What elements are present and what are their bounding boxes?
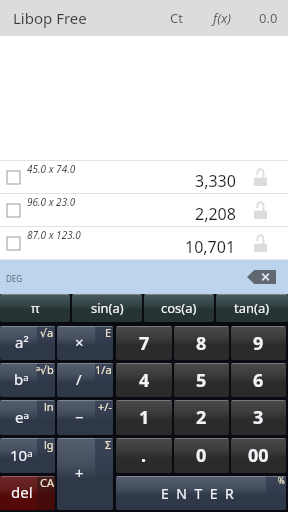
- staticText: /: [76, 369, 82, 389]
- button[interactable]: Ct: [162, 0, 191, 36]
- button[interactable]: tan(a): [216, 294, 288, 322]
- staticText: 3: [253, 405, 264, 430]
- staticText: +/-: [98, 400, 112, 414]
- staticText: 9: [253, 331, 264, 356]
- staticText: 3,330: [195, 170, 236, 192]
- staticText: 10,701: [185, 236, 236, 258]
- button[interactable]: ENTER: [116, 476, 286, 510]
- button[interactable]: 4: [116, 363, 172, 397]
- staticText: 96.0 x 23.0: [27, 195, 76, 209]
- staticText: +: [75, 463, 84, 483]
- button[interactable]: f(x): [206, 0, 238, 36]
- button[interactable]: ×: [57, 326, 113, 360]
- button[interactable]: Lock: [254, 168, 267, 186]
- button[interactable]: 45.0 x 74.0: [0, 161, 288, 193]
- button[interactable]: sin(a): [72, 294, 142, 322]
- staticText: lg: [44, 438, 54, 452]
- button[interactable]: 8: [174, 326, 229, 360]
- button[interactable]: 87.0 x 123.0: [0, 227, 288, 259]
- staticText: 4: [139, 368, 150, 393]
- staticText: 8: [196, 331, 207, 356]
- staticText: Libop Free: [13, 8, 87, 28]
- staticText: del: [11, 482, 33, 502]
- staticText: π: [31, 299, 40, 317]
- staticText: 0: [196, 443, 207, 468]
- staticText: 1/a: [95, 363, 112, 377]
- button[interactable]: 6: [231, 363, 286, 397]
- staticText: ᵃ√b: [36, 363, 54, 377]
- staticText: cos(a): [161, 299, 197, 317]
- staticText: .: [141, 443, 147, 468]
- staticText: 7: [139, 331, 150, 356]
- staticText: 45.0 x 74.0: [27, 162, 76, 176]
- button[interactable]: Backspace: [247, 270, 276, 284]
- staticText: 1: [139, 405, 150, 430]
- button[interactable]: .: [116, 438, 172, 473]
- staticText: ×: [75, 332, 84, 352]
- button[interactable]: 0.0: [253, 0, 283, 36]
- staticText: Ct: [170, 9, 183, 27]
- staticText: %: [278, 476, 285, 486]
- staticText: ln: [44, 400, 54, 414]
- button[interactable]: Lock: [254, 201, 267, 219]
- button[interactable]: 2: [174, 400, 229, 435]
- button[interactable]: 9: [231, 326, 286, 360]
- staticText: bᵃ: [14, 369, 29, 389]
- staticText: 6: [253, 368, 264, 393]
- button[interactable]: 0: [174, 438, 229, 473]
- staticText: DEG: [6, 273, 23, 284]
- button[interactable]: 96.0 x 23.0: [0, 194, 288, 226]
- button[interactable]: 7: [116, 326, 172, 360]
- button[interactable]: π: [0, 294, 70, 322]
- staticText: −: [75, 407, 84, 427]
- staticText: eᵃ: [15, 407, 29, 427]
- button[interactable]: cos(a): [144, 294, 214, 322]
- button[interactable]: −: [57, 400, 113, 435]
- button[interactable]: bᵃ: [0, 363, 55, 397]
- button[interactable]: 5: [174, 363, 229, 397]
- staticText: 87.0 x 123.0: [27, 228, 81, 242]
- button[interactable]: /: [57, 363, 113, 397]
- staticText: Σ: [105, 438, 112, 452]
- staticText: a²: [15, 332, 29, 352]
- staticText: 5: [196, 368, 207, 393]
- button[interactable]: 3: [231, 400, 286, 435]
- button[interactable]: a²: [0, 326, 55, 360]
- button[interactable]: 00: [231, 438, 286, 473]
- button[interactable]: eᵃ: [0, 400, 55, 435]
- staticText: f(x): [213, 9, 231, 27]
- staticText: 0.0: [259, 9, 278, 27]
- button[interactable]: del: [0, 476, 55, 510]
- staticText: E: [105, 326, 112, 340]
- staticText: CA: [40, 476, 54, 490]
- button[interactable]: 10ᵃ: [0, 438, 55, 473]
- staticText: sin(a): [91, 299, 124, 317]
- staticText: 2,208: [195, 203, 236, 225]
- staticText: 2: [196, 405, 207, 430]
- button[interactable]: 1: [116, 400, 172, 435]
- staticText: 10ᵃ: [10, 445, 33, 465]
- staticText: 00: [248, 443, 269, 468]
- staticText: tan(a): [234, 299, 270, 317]
- button[interactable]: +: [57, 438, 113, 510]
- staticText: ENTER: [161, 484, 242, 503]
- staticText: √a: [40, 326, 54, 340]
- button[interactable]: Lock: [254, 234, 267, 252]
